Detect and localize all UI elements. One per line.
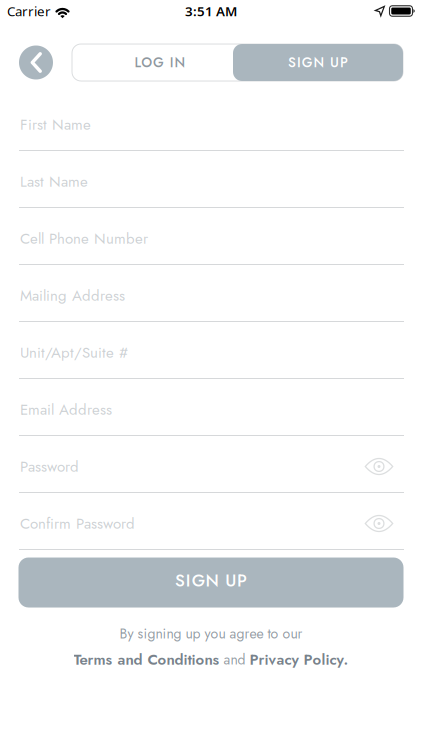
button[interactable]: Back [19,45,53,79]
staticText: LOG IN [134,53,185,72]
staticText: Last Name [20,171,88,192]
staticText: SIGN UP [288,53,348,72]
staticText: Unit/Apt/Suite # [20,342,128,363]
staticText: . [343,649,348,670]
button[interactable]: Email Address [0,379,422,436]
button[interactable]: First Name [0,94,422,151]
staticText: By signing up you agree to our [119,623,302,644]
staticText: Privacy Policy [249,649,343,670]
staticText: Cell Phone Number [20,228,148,249]
staticText: First Name [20,114,91,135]
button[interactable]: Last Name [0,151,422,208]
button[interactable]: Mailing Address [0,265,422,322]
button[interactable]: Show password [364,458,393,475]
staticText: Password [20,456,79,477]
staticText: Confirm Password [20,513,135,534]
button[interactable]: Cell Phone Number [0,208,422,265]
staticText: Email Address [20,399,112,420]
staticText: Mailing Address [20,285,125,306]
staticText: and [219,649,249,670]
staticText: 3:51 AM [185,2,237,20]
button[interactable]: Unit/Apt/Suite # [0,322,422,379]
button[interactable]: Terms and Conditions [73,649,219,670]
button[interactable]: Privacy Policy [249,649,343,670]
staticText: Carrier [7,2,51,20]
staticText: SIGN UP [175,568,247,593]
staticText: Terms and Conditions [73,649,219,670]
button[interactable]: Show confirm password [364,515,393,532]
button[interactable]: LOG IN [72,44,233,81]
button[interactable]: Confirm Password [0,493,422,550]
button[interactable]: Password [0,436,422,493]
button[interactable]: SIGN UP [233,44,403,81]
button[interactable]: SIGN UP [18,557,403,607]
